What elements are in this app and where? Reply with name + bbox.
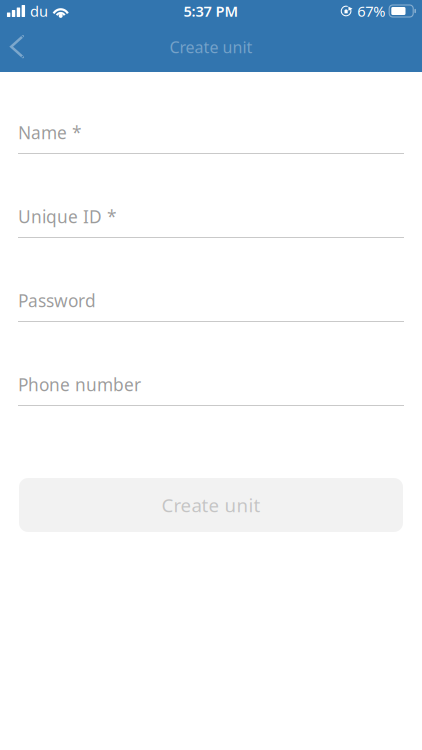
staticText: 5:37 PM [183, 1, 238, 21]
staticText: Create unit [169, 36, 252, 58]
button[interactable]: Back [0, 25, 42, 69]
staticText: Password [18, 289, 96, 312]
button[interactable]: Create unit [19, 478, 403, 532]
staticText: 67% [357, 1, 385, 21]
staticText: du [30, 1, 48, 21]
staticText: Name * [18, 121, 82, 144]
staticText: Unique ID * [18, 205, 117, 228]
staticText: Phone number [18, 373, 141, 396]
staticText: Create unit [161, 493, 260, 517]
